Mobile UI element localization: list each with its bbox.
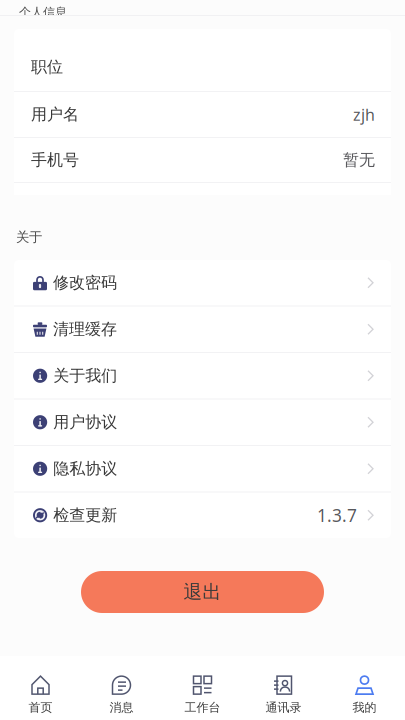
staticText: 检查更新 xyxy=(53,505,117,525)
staticText: 修改密码 xyxy=(53,273,117,293)
staticText: zjh xyxy=(353,104,375,125)
button[interactable]: 关于我们 xyxy=(14,353,391,398)
button[interactable]: 工作台 xyxy=(162,652,243,720)
staticText: 工作台 xyxy=(184,700,220,715)
staticText: 暂无 xyxy=(343,150,375,170)
staticText: 首页 xyxy=(28,700,52,715)
staticText: 关于 xyxy=(16,229,42,245)
staticText: 隐私协议 xyxy=(53,459,117,479)
staticText: 我的 xyxy=(352,700,376,715)
button[interactable]: 修改密码 xyxy=(14,260,391,305)
staticText: 退出 xyxy=(183,580,221,603)
staticText: 通讯录 xyxy=(265,700,301,715)
button[interactable]: 通讯录 xyxy=(243,652,324,720)
staticText: 用户协议 xyxy=(53,412,117,432)
staticText: 用户名 xyxy=(31,105,79,124)
button[interactable]: 退出 xyxy=(81,571,324,613)
staticText: 消息 xyxy=(109,700,133,715)
button[interactable]: 检查更新 xyxy=(14,492,391,538)
staticText: 手机号 xyxy=(31,150,79,170)
staticText: 清理缓存 xyxy=(53,319,117,339)
button[interactable]: 清理缓存 xyxy=(14,306,391,352)
button[interactable]: 消息 xyxy=(81,652,162,720)
button[interactable]: 隐私协议 xyxy=(14,446,391,491)
button[interactable]: 我的 xyxy=(324,652,405,720)
button[interactable]: 用户协议 xyxy=(14,399,391,445)
staticText: 职位 xyxy=(31,57,63,77)
button[interactable]: 首页 xyxy=(0,652,81,720)
staticText: 关于我们 xyxy=(53,366,117,386)
staticText: 1.3.7 xyxy=(317,504,357,527)
staticText: 个人信息 xyxy=(19,5,67,20)
